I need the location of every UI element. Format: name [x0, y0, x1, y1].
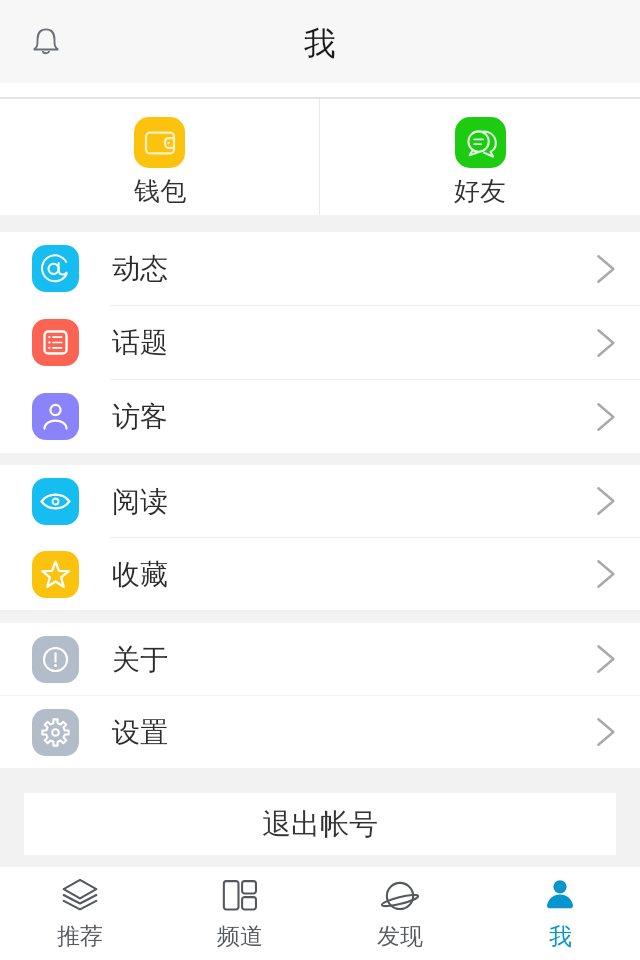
button[interactable]: 收藏 [0, 538, 640, 610]
staticText: 阅读 [112, 484, 168, 519]
staticText: 我 [549, 922, 572, 951]
staticText: 频道 [217, 922, 263, 951]
staticText: 钱包 [134, 175, 186, 208]
staticText: 推荐 [57, 922, 103, 951]
button[interactable]: 阅读 [0, 465, 640, 537]
staticText: 发现 [377, 922, 423, 951]
staticText: 访客 [112, 399, 168, 434]
staticText: 收藏 [112, 557, 168, 592]
button[interactable]: Wallet [0, 99, 319, 215]
button[interactable]: 设置 [0, 696, 640, 768]
staticText: 好友 [454, 175, 506, 208]
staticText: 设置 [112, 715, 168, 750]
staticText: 话题 [112, 325, 168, 360]
staticText: 动态 [112, 251, 168, 286]
button[interactable]: Notifications [14, 10, 78, 74]
button[interactable]: Friends [320, 99, 640, 215]
button[interactable]: 我 [480, 867, 640, 960]
button[interactable]: 动态 [0, 232, 640, 305]
staticText: 退出帐号 [262, 806, 378, 843]
button[interactable]: 关于 [0, 623, 640, 695]
staticText: 关于 [112, 642, 168, 677]
button[interactable]: 退出帐号 [24, 793, 616, 855]
button[interactable]: 话题 [0, 306, 640, 379]
button[interactable]: 推荐 [0, 867, 160, 960]
button[interactable]: 发现 [320, 867, 480, 960]
button[interactable]: 访客 [0, 380, 640, 453]
button[interactable]: 频道 [160, 867, 320, 960]
staticText: 我 [304, 23, 336, 63]
